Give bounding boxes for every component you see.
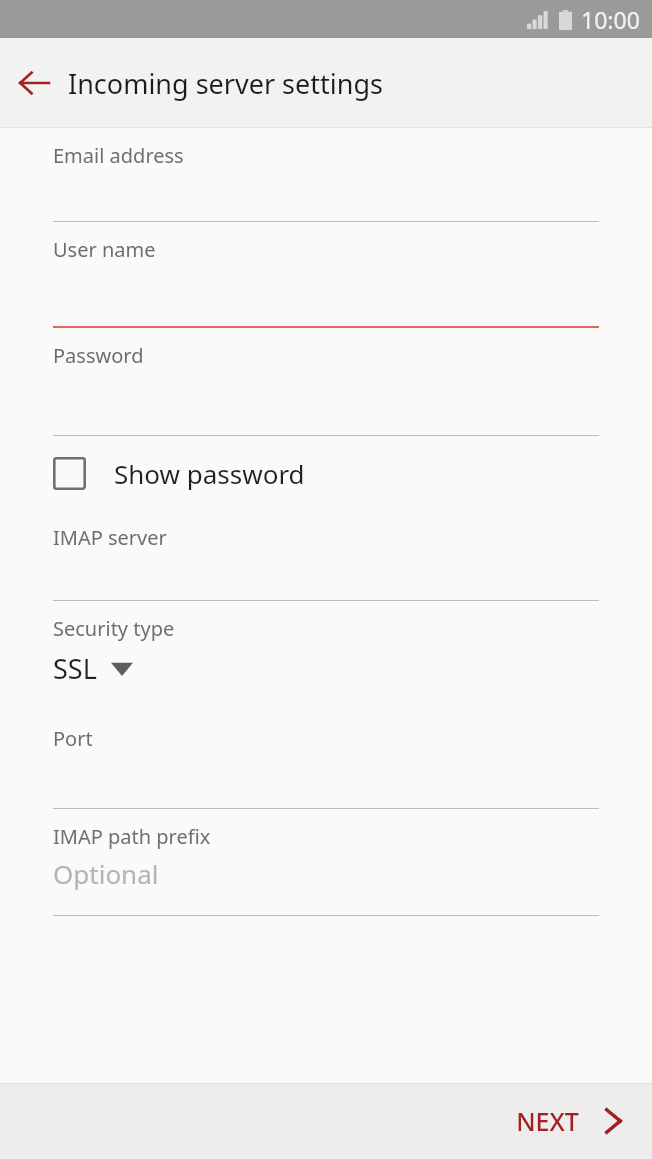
staticText: Password (53, 342, 144, 369)
staticText: Show password (114, 456, 305, 491)
staticText: User name (53, 236, 156, 263)
staticText: Optional (53, 856, 159, 891)
staticText: IMAP path prefix (53, 823, 211, 850)
staticText: Port (53, 725, 93, 752)
button[interactable]: Show password (0, 436, 652, 510)
staticText: NEXT (516, 1104, 579, 1138)
button[interactable]: User name (0, 222, 652, 328)
staticText: Security type (53, 615, 175, 642)
staticText: SSL (53, 650, 97, 687)
staticText: IMAP server (53, 524, 167, 551)
button[interactable]: Email address (0, 128, 652, 222)
button[interactable]: Password (0, 328, 652, 436)
button[interactable]: Security type (0, 601, 652, 711)
button[interactable]: IMAP path prefix (0, 809, 652, 916)
staticText: Email address (53, 142, 184, 169)
staticText: Incoming server settings (68, 65, 383, 102)
button[interactable]: IMAP server (0, 510, 652, 601)
button[interactable]: Back (0, 38, 68, 128)
button[interactable]: NEXT (486, 1083, 652, 1159)
staticText: 10:00 (581, 4, 640, 35)
button[interactable]: Port (0, 711, 652, 809)
